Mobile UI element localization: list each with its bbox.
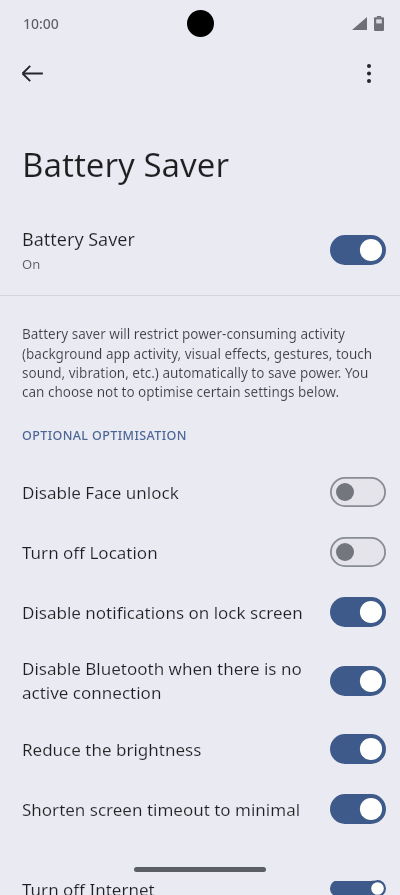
staticText: Disable Bluetooth when there is no activ… [22,657,314,704]
button[interactable]: More options [345,49,393,97]
staticText: Disable notifications on lock screen [22,601,314,624]
staticText: OPTIONAL OPTIMISATION [22,427,187,444]
button[interactable]: Disable notifications on lock screen [0,582,400,642]
staticText: Turn off Internet [22,878,155,895]
button[interactable]: Turn off Location [0,522,400,582]
staticText: Shorten screen timeout to minimal [22,798,314,821]
button[interactable]: Shorten screen timeout to minimal [0,779,400,839]
staticText: Battery Saver [22,227,135,252]
button[interactable]: Reduce the brightness [0,719,400,779]
staticText: Turn off Location [22,541,314,564]
button[interactable]: Disable Bluetooth when there is no activ… [0,642,400,719]
button[interactable]: Battery Saver [0,227,400,273]
staticText: Battery saver will restrict power-consum… [22,325,378,401]
button[interactable]: Disable Face unlock [0,462,400,522]
staticText: 10:00 [23,14,59,33]
staticText: Disable Face unlock [22,481,314,504]
button[interactable]: Back [8,49,56,97]
staticText: Battery Saver [22,142,230,187]
staticText: Reduce the brightness [22,738,314,761]
staticText: On [22,255,41,273]
button[interactable]: Turn off Internet [0,878,400,895]
